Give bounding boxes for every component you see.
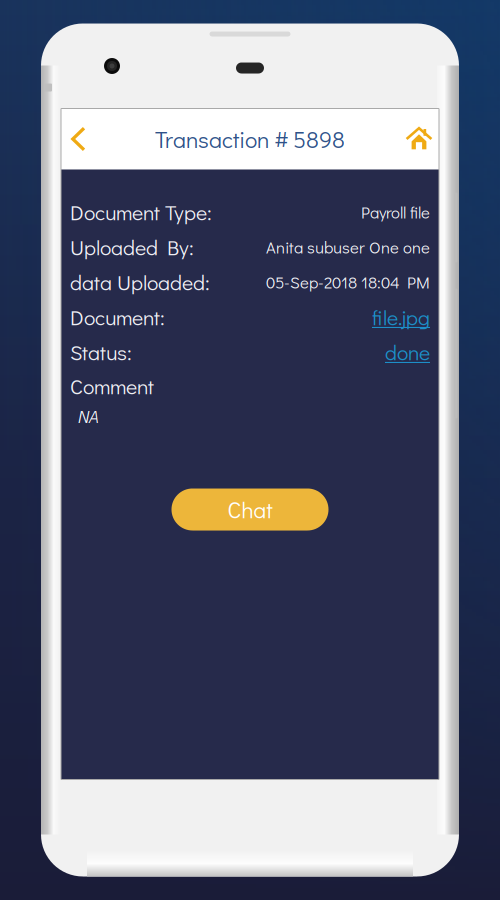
button[interactable]: done [385,338,430,366]
staticText: Document: [70,303,165,331]
button[interactable]: Back [61,108,119,169]
staticText: data Uploaded: [70,268,210,296]
staticText: Transaction # 5898 [155,124,345,154]
staticText: Uploaded By: [70,233,194,261]
staticText: Comment [70,372,154,400]
staticText: done [385,338,430,366]
staticText: 05-Sep-2018 18:04 PM [266,271,430,293]
button[interactable]: file.jpg [372,303,430,331]
staticText: NA [77,405,98,428]
button[interactable]: Chat [171,488,328,530]
staticText: Payroll file [361,201,430,223]
staticText: Status: [70,338,132,366]
staticText: Chat [227,495,272,524]
staticText: Anita subuser One one [266,236,430,258]
staticText: Document Type: [70,198,212,226]
staticText: file.jpg [372,303,430,331]
button[interactable]: Home [381,108,439,169]
